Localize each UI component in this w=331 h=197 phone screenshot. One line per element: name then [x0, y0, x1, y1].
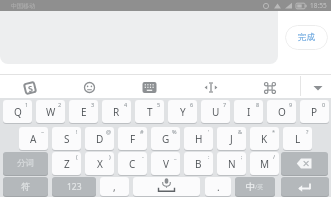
- staticText: S: [27, 82, 34, 94]
- staticText: 9: [289, 101, 293, 108]
- button[interactable]: U: [201, 100, 230, 123]
- button[interactable]: R: [102, 100, 131, 123]
- button[interactable]: [263, 81, 277, 95]
- staticText: .: [217, 180, 220, 194]
- staticText: ): [109, 153, 111, 160]
- button[interactable]: 分词: [3, 152, 48, 175]
- staticText: J: [230, 132, 233, 146]
- staticText: G: [162, 132, 170, 146]
- staticText: C: [129, 157, 136, 171]
- staticText: 18:55: [310, 1, 327, 10]
- button[interactable]: W: [36, 100, 65, 123]
- staticText: ?: [306, 128, 309, 135]
- button[interactable]: X: [85, 152, 114, 175]
- button[interactable]: Q: [3, 100, 32, 123]
- staticText: 0: [322, 101, 326, 108]
- staticText: T: [147, 105, 153, 119]
- button[interactable]: T: [135, 100, 164, 123]
- staticText: V: [163, 157, 169, 171]
- button[interactable]: [310, 82, 326, 94]
- button[interactable]: 中: [235, 177, 275, 196]
- staticText: ;: [241, 153, 243, 160]
- staticText: @: [106, 128, 111, 135]
- button[interactable]: [82, 80, 97, 95]
- staticText: -: [142, 153, 144, 160]
- button[interactable]: I: [234, 100, 263, 123]
- button[interactable]: G: [151, 127, 180, 150]
- button[interactable]: 符: [3, 177, 48, 196]
- staticText: 6: [190, 101, 194, 108]
- staticText: &: [238, 128, 243, 135]
- staticText: R: [113, 105, 120, 119]
- button[interactable]: [281, 177, 329, 196]
- button[interactable]: [133, 177, 200, 196]
- staticText: 中国移动: [11, 2, 35, 10]
- button[interactable]: P: [300, 100, 329, 123]
- button[interactable]: Z: [52, 152, 81, 175]
- button[interactable]: S: [22, 80, 37, 95]
- staticText: _: [174, 153, 177, 160]
- staticText: (: [76, 153, 78, 160]
- button[interactable]: J: [217, 127, 246, 150]
- button[interactable]: .: [205, 177, 231, 196]
- button[interactable]: H: [184, 127, 213, 150]
- button[interactable]: M: [250, 152, 279, 175]
- staticText: :: [208, 153, 210, 160]
- button[interactable]: 完成: [285, 25, 328, 50]
- staticText: 符: [21, 181, 30, 192]
- staticText: 123: [67, 181, 82, 193]
- button[interactable]: S: [52, 127, 81, 150]
- staticText: 1: [25, 101, 29, 108]
- staticText: 分词: [17, 158, 34, 169]
- staticText: 7: [223, 101, 227, 108]
- staticText: A: [30, 132, 37, 146]
- button[interactable]: K: [250, 127, 279, 150]
- button[interactable]: E: [69, 100, 98, 123]
- staticText: /英: [255, 183, 264, 191]
- staticText: 5: [157, 101, 161, 108]
- button[interactable]: A: [19, 127, 48, 150]
- button[interactable]: N: [217, 152, 246, 175]
- staticText: /: [273, 153, 276, 160]
- staticText: P: [311, 105, 318, 119]
- button[interactable]: B: [184, 152, 213, 175]
- button[interactable]: [142, 81, 157, 94]
- button[interactable]: [203, 81, 219, 94]
- staticText: M: [260, 157, 270, 171]
- staticText: N: [228, 157, 236, 171]
- staticText: 4: [124, 101, 128, 108]
- staticText: ~: [41, 128, 45, 135]
- staticText: I: [247, 105, 251, 119]
- button[interactable]: L: [283, 127, 312, 150]
- staticText: Y: [180, 105, 186, 119]
- button[interactable]: F: [118, 127, 147, 150]
- staticText: D: [96, 132, 104, 146]
- button[interactable]: O: [267, 100, 296, 123]
- staticText: %: [172, 128, 177, 135]
- staticText: ': [208, 128, 210, 135]
- staticText: F: [130, 132, 136, 146]
- staticText: X: [97, 157, 103, 171]
- staticText: L: [295, 132, 301, 146]
- button[interactable]: D: [85, 127, 114, 150]
- staticText: U: [212, 105, 220, 119]
- staticText: #: [140, 128, 144, 135]
- staticText: O: [278, 105, 286, 119]
- staticText: Z: [64, 157, 70, 171]
- staticText: Q: [14, 105, 22, 119]
- staticText: 完成: [298, 32, 315, 43]
- staticText: E: [81, 105, 87, 119]
- staticText: B: [195, 157, 202, 171]
- button[interactable]: Y: [168, 100, 197, 123]
- button[interactable]: C: [118, 152, 147, 175]
- staticText: 3: [91, 101, 95, 108]
- button[interactable]: 123: [52, 177, 96, 196]
- staticText: 中: [246, 181, 255, 192]
- staticText: W: [46, 105, 56, 119]
- button[interactable]: [281, 152, 328, 175]
- staticText: K: [261, 132, 268, 146]
- button[interactable]: ,: [100, 177, 129, 196]
- staticText: *: [272, 128, 276, 135]
- staticText: 8: [256, 101, 260, 108]
- button[interactable]: V: [151, 152, 180, 175]
